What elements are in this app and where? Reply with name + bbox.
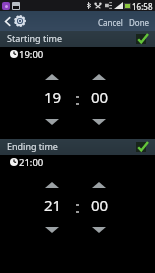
button[interactable]: Back	[2, 11, 30, 31]
button[interactable]: Decrease	[88, 113, 110, 131]
button[interactable]: Cancel	[95, 16, 125, 29]
staticText: Cancel	[98, 17, 123, 28]
button[interactable]: Decrease	[88, 221, 110, 239]
other: Settings	[14, 15, 26, 27]
button[interactable]: Starting time	[0, 31, 155, 47]
button[interactable]: Increase	[41, 176, 63, 194]
staticText: Ending time	[7, 140, 58, 152]
button[interactable]: Increase	[88, 176, 110, 194]
button[interactable]: Done	[127, 16, 151, 29]
staticText: 16:58	[132, 1, 153, 12]
staticText: 21	[44, 195, 62, 215]
staticText: Starting time	[7, 32, 63, 44]
staticText: 19:00	[19, 48, 44, 61]
staticText: 21:00	[19, 156, 44, 169]
staticText: Done	[129, 17, 150, 28]
staticText: 00	[91, 87, 109, 107]
button[interactable]: Decrease	[41, 113, 63, 131]
staticText: 19	[44, 87, 62, 107]
button[interactable]: Ending time	[0, 139, 155, 155]
button[interactable]: Increase	[41, 68, 63, 86]
staticText: 00	[91, 195, 109, 215]
button[interactable]: Decrease	[41, 221, 63, 239]
button[interactable]: Increase	[88, 68, 110, 86]
